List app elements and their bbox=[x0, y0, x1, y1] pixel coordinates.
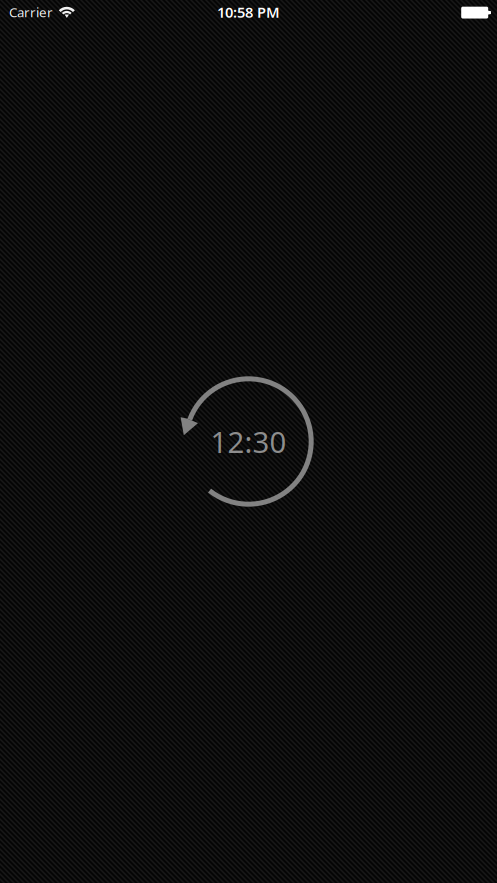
staticText: Carrier bbox=[9, 3, 53, 21]
button[interactable]: Timer, 12:30 remaining. Tap to restart bbox=[173, 366, 323, 516]
staticText: 12:30 bbox=[210, 422, 286, 461]
staticText: 10:58 PM bbox=[217, 2, 280, 22]
